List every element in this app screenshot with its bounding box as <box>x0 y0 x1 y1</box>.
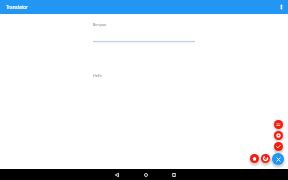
button[interactable]: Home <box>250 154 259 163</box>
staticText: Bonjour <box>93 22 107 27</box>
button[interactable]: Close menu <box>272 153 284 165</box>
button[interactable]: Keyboard input <box>274 120 283 129</box>
staticText: Translator <box>6 4 28 10</box>
button[interactable]: Home <box>140 169 151 180</box>
button[interactable]: Recent apps <box>168 169 179 180</box>
button[interactable]: More options <box>274 0 288 14</box>
button[interactable]: Done <box>274 142 283 151</box>
staticText: Hello <box>93 73 102 78</box>
button[interactable]: History <box>261 154 270 163</box>
button[interactable]: Voice record <box>274 131 283 140</box>
button[interactable]: Back <box>111 169 122 180</box>
